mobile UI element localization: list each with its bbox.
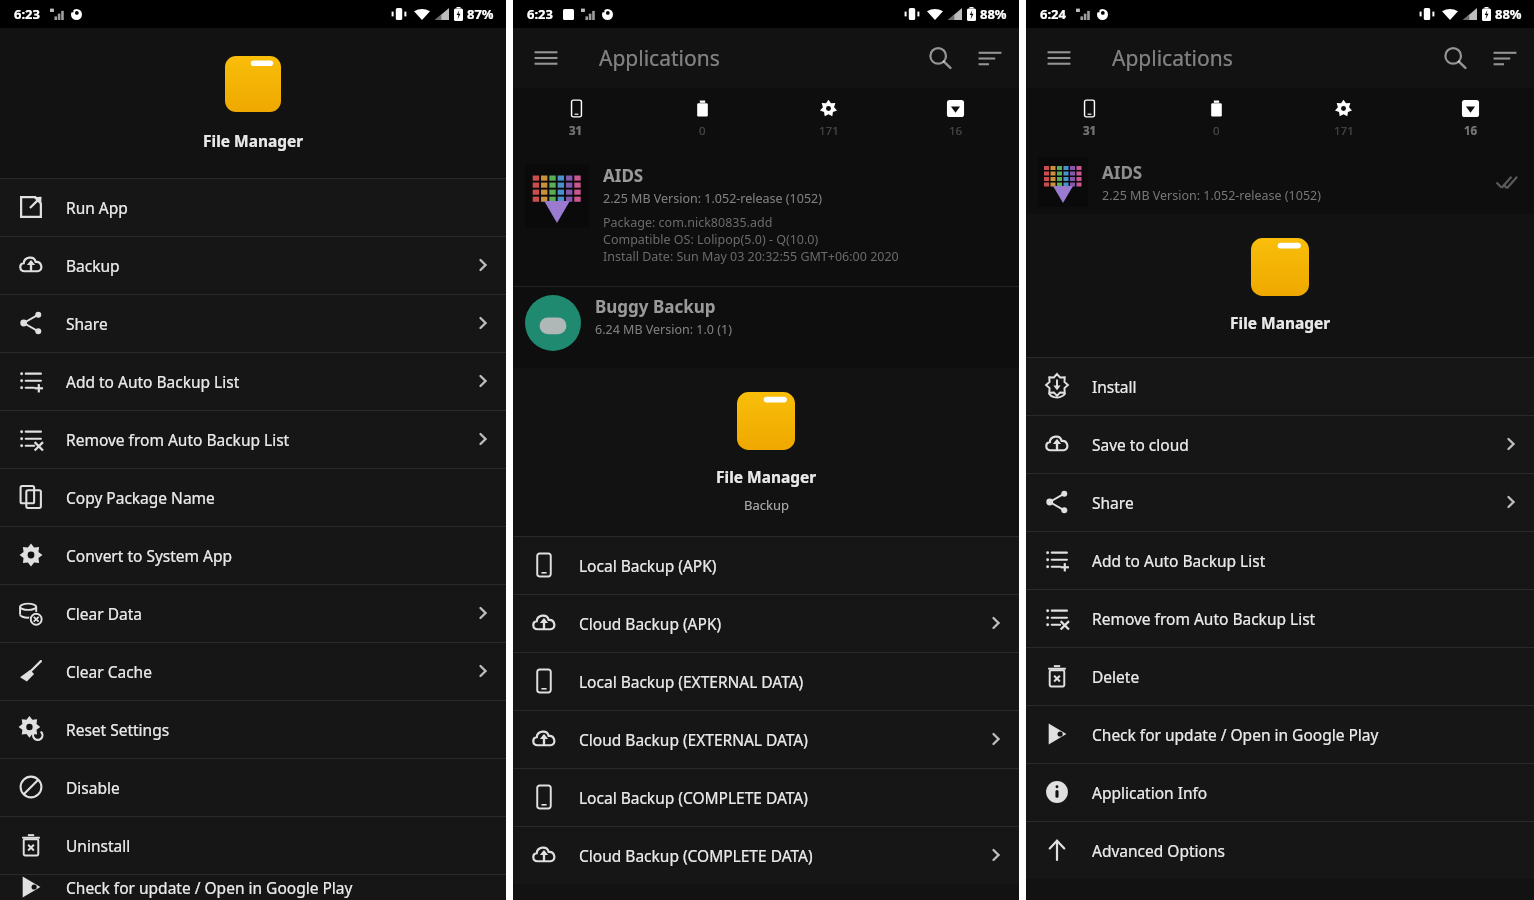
button[interactable]: Sort <box>1492 45 1518 71</box>
button[interactable]: Uninstall <box>0 816 506 874</box>
button[interactable]: Share <box>1026 473 1534 531</box>
button[interactable]: 31 <box>1026 88 1153 150</box>
button[interactable]: Backup <box>0 236 506 294</box>
button[interactable]: Search <box>1442 45 1468 71</box>
staticText: Buggy Backup <box>595 295 716 318</box>
staticText: Remove from Auto Backup List <box>1092 608 1316 629</box>
staticText: 6:23 <box>14 5 40 23</box>
staticText: 31 <box>1083 123 1097 139</box>
button[interactable]: Add to Auto Backup List <box>0 352 506 410</box>
button[interactable]: Remove from Auto Backup List <box>0 410 506 468</box>
staticText: Run App <box>66 197 128 218</box>
staticText: 6.24 MB Version: 1.0 (1) <box>595 321 732 338</box>
staticText: 88% <box>980 5 1007 23</box>
staticText: File Manager <box>716 466 817 487</box>
staticText: Package: com.nick80835.add <box>603 214 773 231</box>
staticText: 88% <box>1495 5 1522 23</box>
button[interactable]: 16 <box>1407 88 1534 150</box>
button[interactable]: Local Backup (APK) <box>513 536 1019 594</box>
staticText: AIDS <box>1102 161 1143 184</box>
button[interactable]: Add to Auto Backup List <box>1026 531 1534 589</box>
staticText: 0 <box>699 123 706 139</box>
staticText: Copy Package Name <box>66 487 215 508</box>
staticText: Applications <box>1112 44 1233 73</box>
staticText: Share <box>66 313 108 334</box>
button[interactable]: 31 <box>513 88 639 150</box>
button[interactable]: Search <box>927 45 953 71</box>
staticText: Convert to System App <box>66 545 233 566</box>
staticText: 171 <box>1334 123 1354 139</box>
staticText: Add to Auto Backup List <box>66 371 240 392</box>
button[interactable]: Menu <box>1046 45 1072 71</box>
button[interactable]: Save to cloud <box>1026 415 1534 473</box>
staticText: Check for update / Open in Google Play <box>1092 724 1379 745</box>
button[interactable]: 16 <box>892 88 1019 150</box>
button[interactable]: Check for update / Open in Google Play <box>1026 705 1534 763</box>
staticText: Uninstall <box>66 835 131 856</box>
button[interactable]: Local Backup (COMPLETE DATA) <box>513 768 1019 826</box>
button[interactable]: Remove from Auto Backup List <box>1026 589 1534 647</box>
button[interactable]: Install <box>1026 357 1534 415</box>
button[interactable]: 0 <box>1153 88 1280 150</box>
staticText: Backup <box>744 496 789 514</box>
staticText: Install <box>1092 376 1137 397</box>
staticText: Cloud Backup (COMPLETE DATA) <box>579 845 813 866</box>
staticText: Remove from Auto Backup List <box>66 429 290 450</box>
button[interactable]: Cloud Backup (APK) <box>513 594 1019 652</box>
staticText: Compatible OS: Lolipop(5.0) - Q(10.0) <box>603 231 819 248</box>
button[interactable]: Delete <box>1026 647 1534 705</box>
staticText: Application Info <box>1092 782 1208 803</box>
button[interactable]: 0 <box>639 88 765 150</box>
button[interactable]: Cloud Backup (EXTERNAL DATA) <box>513 710 1019 768</box>
button[interactable]: Advanced Options <box>1026 821 1534 879</box>
button[interactable]: 171 <box>1280 88 1407 150</box>
staticText: 2.25 MB Version: 1.052-release (1052) <box>603 190 822 207</box>
staticText: 31 <box>569 123 583 139</box>
staticText: Install Date: Sun May 03 20:32:55 GMT+06… <box>603 248 899 265</box>
staticText: 16 <box>1464 123 1478 139</box>
staticText: Delete <box>1092 666 1140 687</box>
button[interactable]: Sort <box>977 45 1003 71</box>
staticText: Disable <box>66 777 120 798</box>
staticText: Save to cloud <box>1092 434 1189 455</box>
button[interactable]: 171 <box>765 88 892 150</box>
staticText: File Manager <box>1230 312 1331 333</box>
button[interactable]: Application Info <box>1026 763 1534 821</box>
staticText: Clear Cache <box>66 661 152 682</box>
staticText: Backup <box>66 255 120 276</box>
staticText: 171 <box>819 123 839 139</box>
button[interactable]: Run App <box>0 178 506 236</box>
button[interactable]: Reset Settings <box>0 700 506 758</box>
staticText: 2.25 MB Version: 1.052-release (1052) <box>1102 187 1321 204</box>
staticText: 0 <box>1213 123 1220 139</box>
staticText: Local Backup (COMPLETE DATA) <box>579 787 808 808</box>
staticText: File Manager <box>203 130 304 151</box>
button[interactable]: Share <box>0 294 506 352</box>
button[interactable]: Menu <box>533 45 559 71</box>
button[interactable]: Copy Package Name <box>0 468 506 526</box>
staticText: Local Backup (APK) <box>579 555 717 576</box>
staticText: Clear Data <box>66 603 142 624</box>
staticText: 87% <box>467 5 494 23</box>
staticText: Reset Settings <box>66 719 170 740</box>
staticText: AIDS <box>603 164 644 187</box>
staticText: Share <box>1092 492 1134 513</box>
staticText: 6:24 <box>1040 5 1066 23</box>
staticText: Cloud Backup (APK) <box>579 613 722 634</box>
staticText: Advanced Options <box>1092 840 1225 861</box>
staticText: Applications <box>599 44 720 73</box>
button[interactable]: Local Backup (EXTERNAL DATA) <box>513 652 1019 710</box>
staticText: 16 <box>949 123 963 139</box>
staticText: 6:23 <box>527 5 553 23</box>
staticText: Add to Auto Backup List <box>1092 550 1266 571</box>
button[interactable]: Clear Cache <box>0 642 506 700</box>
button[interactable]: Cloud Backup (COMPLETE DATA) <box>513 826 1019 884</box>
button[interactable]: Convert to System App <box>0 526 506 584</box>
staticText: Cloud Backup (EXTERNAL DATA) <box>579 729 808 750</box>
button[interactable]: Check for update / Open in Google Play <box>0 874 506 900</box>
button[interactable]: Clear Data <box>0 584 506 642</box>
staticText: Local Backup (EXTERNAL DATA) <box>579 671 804 692</box>
staticText: Check for update / Open in Google Play <box>66 877 353 898</box>
button[interactable]: Disable <box>0 758 506 816</box>
